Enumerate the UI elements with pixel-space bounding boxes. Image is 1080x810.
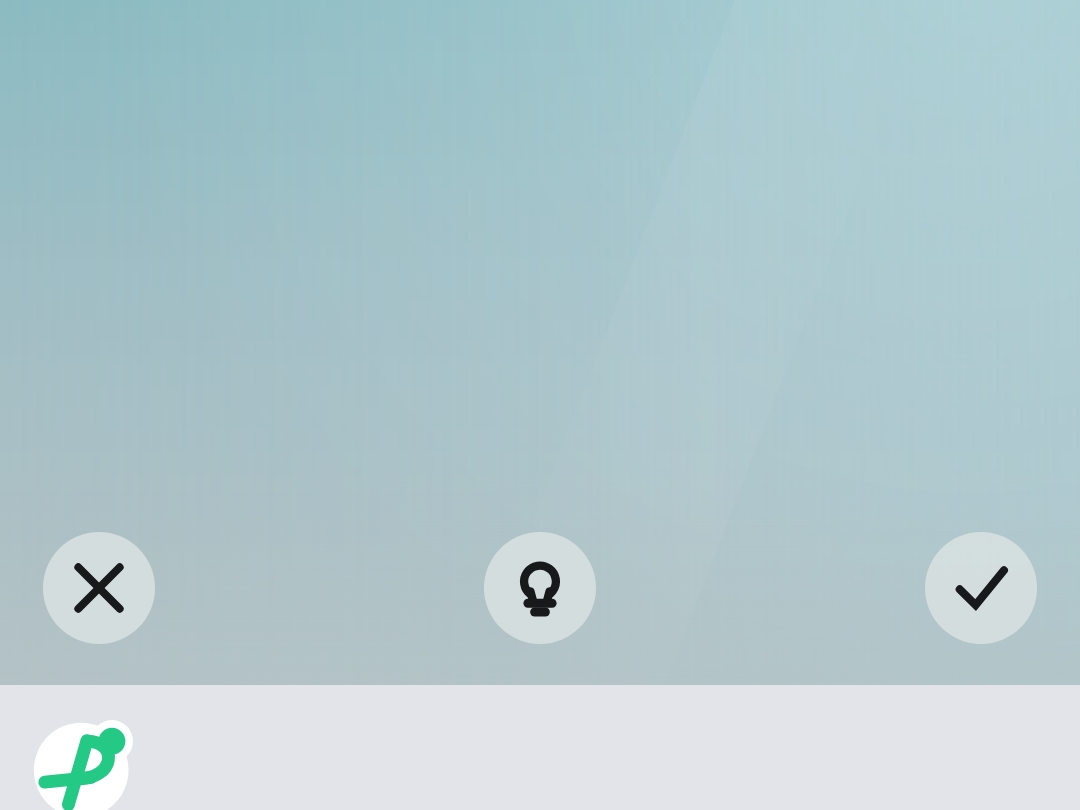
button[interactable]: Cancel bbox=[43, 532, 155, 644]
button[interactable]: Tips bbox=[484, 532, 596, 644]
button[interactable]: App logo bbox=[30, 715, 158, 810]
button[interactable]: Confirm bbox=[925, 532, 1037, 644]
